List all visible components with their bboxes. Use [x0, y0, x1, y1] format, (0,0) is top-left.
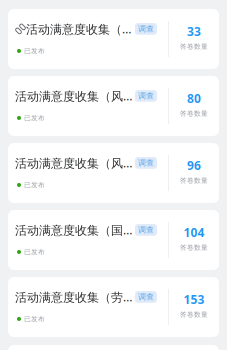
staticText: 调查 — [138, 225, 154, 235]
button[interactable]: 活动满意度收集（风… — [8, 76, 219, 136]
staticText: 调查 — [138, 158, 154, 168]
staticText: 已发布 — [24, 248, 45, 256]
staticText: 答卷数量 — [180, 176, 208, 185]
staticText: 已发布 — [24, 114, 45, 122]
staticText: 活动满意度收集（国… — [15, 222, 132, 238]
staticText: 活动满意度收集（… — [26, 21, 131, 37]
button[interactable]: 活动满意度收集（风… — [8, 143, 219, 203]
button[interactable]: 活动满意度收集（… — [8, 9, 219, 69]
staticText: 答卷数量 — [180, 243, 208, 252]
staticText: 答卷数量 — [180, 310, 208, 319]
staticText: 已发布 — [24, 315, 45, 323]
staticText: 活动满意度收集（风… — [15, 88, 132, 104]
staticText: 答卷数量 — [180, 109, 208, 118]
staticText: 已发布 — [24, 181, 45, 189]
staticText: 活动满意度收集（劳… — [15, 289, 132, 305]
staticText: 已发布 — [24, 47, 45, 55]
staticText: 33 — [187, 23, 201, 39]
staticText: 活动满意度收集（风… — [15, 155, 132, 171]
staticText: 调查 — [138, 91, 154, 101]
staticText: 调查 — [138, 292, 154, 302]
button[interactable]: 活动满意度收集（劳… — [8, 277, 219, 337]
button[interactable]: 活动满意度收集（国… — [8, 210, 219, 270]
staticText: 104 — [183, 224, 204, 240]
staticText: 答卷数量 — [180, 42, 208, 51]
staticText: 调查 — [138, 24, 154, 34]
staticText: 96 — [187, 157, 201, 173]
staticText: 153 — [183, 291, 204, 307]
staticText: 80 — [187, 90, 201, 106]
